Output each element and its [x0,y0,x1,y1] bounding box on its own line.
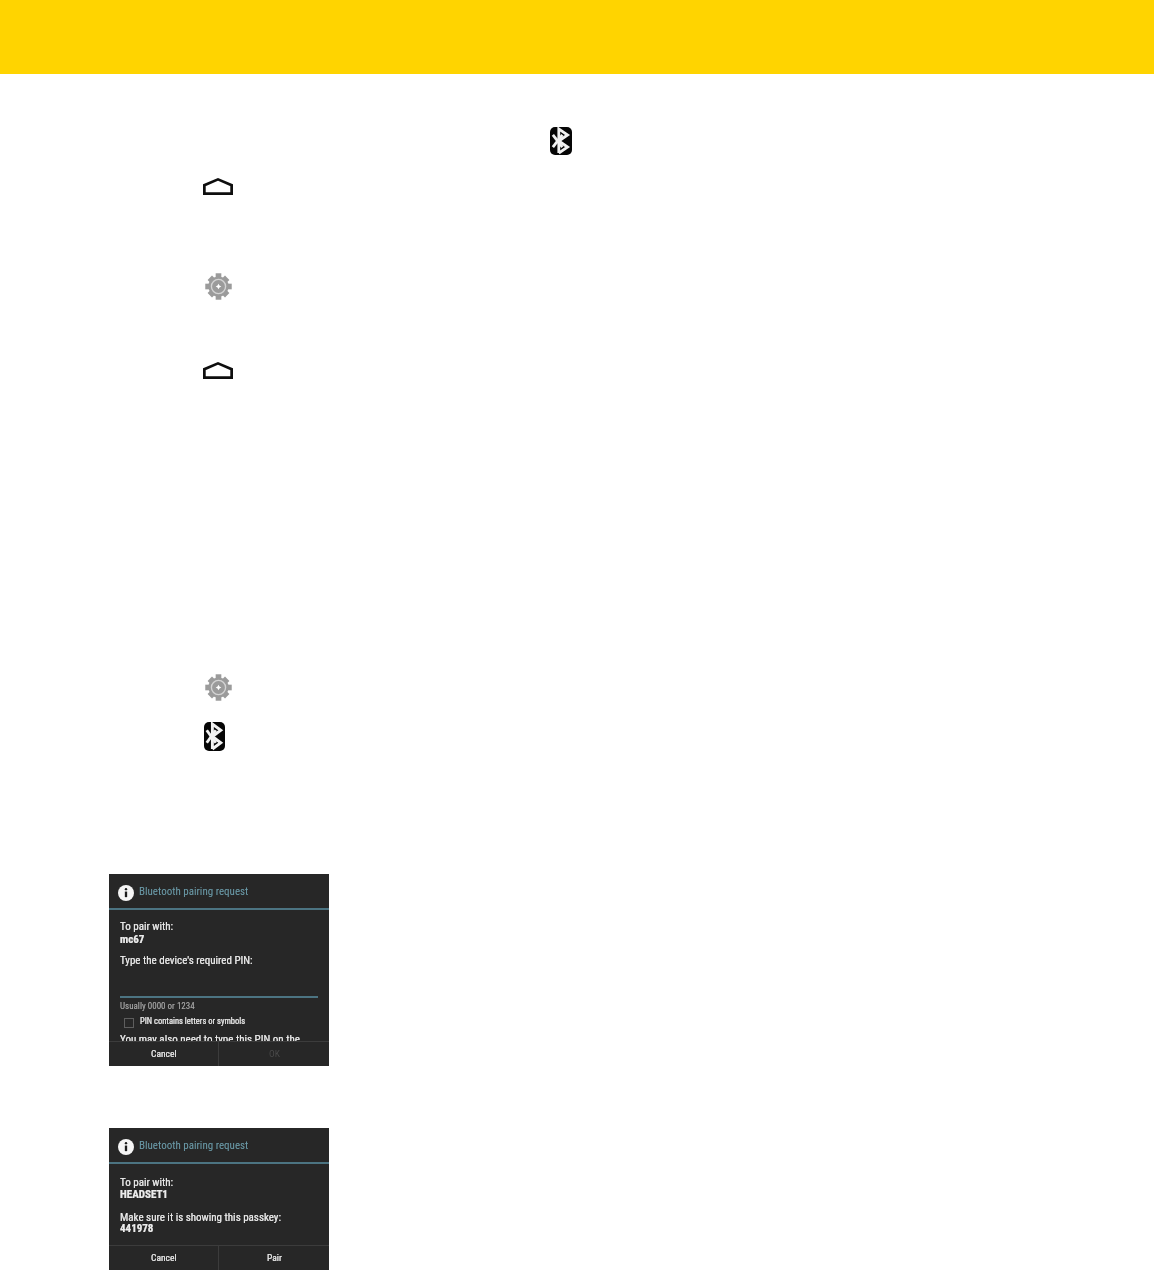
staticText: mc67 [120,933,145,946]
staticText: Cancel [151,1252,177,1263]
button[interactable]: PIN contains letters or symbols [124,1018,134,1028]
other: Bluetooth [550,127,572,155]
staticText: Make sure it is showing this passkey: [120,1211,281,1224]
staticText: Bluetooth pairing request [139,885,249,898]
button[interactable]: Bluetooth [204,722,225,751]
button[interactable]: Bluetooth [550,127,572,155]
staticText: Cancel [151,1048,177,1059]
button[interactable]: Home [203,178,233,195]
staticText: Type the device's required PIN: [120,954,253,967]
other: Home [203,178,233,195]
staticText: To pair with: [120,1176,174,1189]
other: Bluetooth [204,722,225,751]
button[interactable]: Pair [219,1245,329,1270]
staticText: You may also need to type this PIN on th… [120,1033,300,1046]
staticText: Usually 0000 or 1234 [120,1001,195,1012]
button[interactable]: Cancel [109,1041,218,1066]
button[interactable]: OK [219,1041,329,1066]
staticText: 441978 [120,1222,154,1235]
staticText: OK [269,1048,280,1059]
staticText: Pair [267,1252,282,1263]
staticText: To pair with: [120,920,174,933]
other: Settings [205,674,232,701]
other: Settings [205,273,232,300]
button[interactable]: Cancel [109,1245,218,1270]
other: Home [203,362,233,379]
staticText: PIN contains letters or symbols [140,1016,246,1026]
button[interactable]: Home [203,362,233,379]
button[interactable]: Settings [205,674,232,701]
staticText: Bluetooth pairing request [139,1139,249,1152]
staticText: HEADSET1 [120,1188,168,1201]
button[interactable]: Settings [205,273,232,300]
